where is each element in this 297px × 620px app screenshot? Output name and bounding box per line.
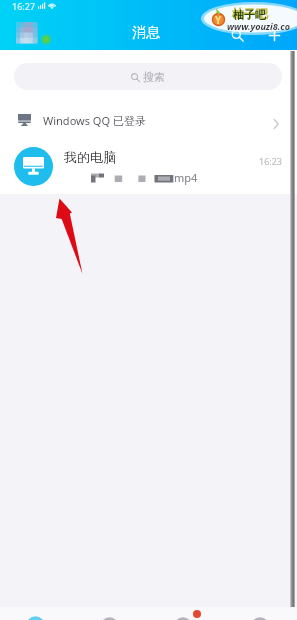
staticText: www.youzi8.co	[227, 20, 290, 32]
staticText: 我的电脑	[64, 149, 116, 165]
staticText: 柚子吧	[232, 6, 268, 21]
button[interactable]: Messages	[7, 607, 63, 620]
button[interactable]: 搜索	[14, 63, 282, 90]
staticText: 消息	[132, 24, 160, 42]
staticText: mp4	[174, 170, 198, 185]
button[interactable]: Profile avatar	[16, 22, 37, 43]
button[interactable]: Profile	[232, 607, 288, 620]
staticText: 柚子吧	[233, 8, 266, 22]
staticText: 16:23	[259, 155, 283, 167]
button[interactable]: Add	[264, 25, 284, 45]
button[interactable]: Contacts	[82, 607, 138, 620]
button[interactable]: 我的电脑	[0, 140, 297, 194]
button[interactable]: Search	[227, 25, 247, 45]
staticText: 16:27	[12, 0, 36, 12]
staticText: Y	[215, 13, 222, 27]
staticText: 搜索	[143, 70, 165, 84]
button[interactable]: Windows QQ 已登录	[0, 104, 297, 136]
button[interactable]: Moments	[156, 607, 212, 620]
staticText: Windows QQ 已登录	[43, 113, 146, 128]
